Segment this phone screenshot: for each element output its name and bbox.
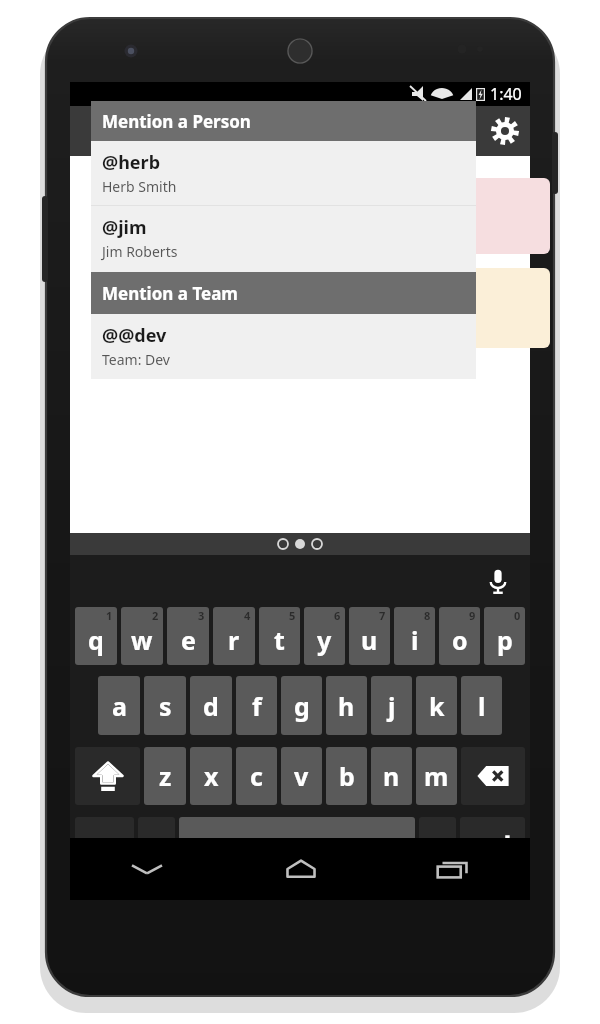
staticText: 3 [198,608,205,623]
staticText: r [228,623,240,657]
button[interactable]: n [371,747,412,805]
button[interactable]: 3 [167,607,209,665]
staticText: s [159,689,172,723]
staticText: k [429,689,445,723]
button[interactable]: Space [179,817,415,874]
button[interactable]: . [419,817,456,874]
staticText: n [383,759,400,793]
staticText: Post [80,764,124,793]
staticText: 1 [106,608,113,623]
button[interactable]: 7 [349,607,390,665]
staticText: x [204,759,219,793]
staticText: Team: Dev [102,350,170,369]
staticText: q [88,623,104,657]
staticText: @@dev [102,323,167,348]
button[interactable]: a [98,676,140,735]
button[interactable]: d [190,676,232,735]
button[interactable]: , [138,817,175,874]
staticText: 5 [289,608,296,623]
staticText: u [361,623,378,657]
button[interactable]: # [373,856,518,894]
button[interactable]: Voice input [480,563,516,599]
button[interactable]: f [236,676,277,735]
staticText: 0 [514,608,521,623]
button[interactable]: Clear [486,808,516,838]
staticText: 9 [469,608,476,623]
staticText: @@ [282,862,318,889]
button[interactable]: 0 [484,607,525,665]
button[interactable]: k [416,676,457,735]
staticText: t [274,623,285,657]
staticText: j [388,689,396,723]
button[interactable]: Send [476,756,520,800]
button[interactable]: g [281,676,322,735]
button[interactable] [370,268,550,348]
staticText: ?123 [85,833,125,858]
button[interactable]: 5m ago [370,178,550,254]
staticText: 6 [334,608,341,623]
staticText: Mention a Person [102,110,251,133]
button[interactable]: h [326,676,367,735]
button[interactable]: j [371,676,412,735]
staticText: a [112,689,127,723]
button[interactable]: @@ [227,856,372,894]
staticText: 7 [379,608,386,623]
button[interactable]: c [236,747,277,805]
button[interactable]: @herb [91,141,476,205]
staticText: z [159,759,172,793]
button[interactable]: 4 [213,607,255,665]
staticText: @herb [102,150,161,175]
staticText: f [252,689,262,723]
staticText: b [339,759,355,793]
button[interactable]: 8 [394,607,435,665]
button[interactable]: z [144,747,186,805]
button[interactable]: 9 [439,607,480,665]
button[interactable]: 6 [304,607,345,665]
staticText: 1:40 [490,83,522,105]
staticText: 8 [424,608,431,623]
staticText: w [131,623,153,657]
button[interactable]: Recents [377,838,530,900]
staticText: v [294,759,309,793]
staticText: # [439,862,452,889]
staticText: o [452,623,468,657]
button[interactable]: Home [224,838,377,900]
staticText: @ [84,810,104,840]
button[interactable]: 2 [121,607,163,665]
staticText: l [478,689,486,723]
staticText: Herb Smith [102,177,177,196]
button[interactable]: s [144,676,186,735]
staticText: m [424,759,449,793]
staticText: , [153,833,160,863]
button[interactable]: Enter [460,817,525,874]
button[interactable]: b [326,747,367,805]
button[interactable]: @jim [91,206,476,272]
button[interactable]: @@dev [91,314,476,379]
staticText: i [411,623,419,657]
button[interactable]: x [190,747,232,805]
button[interactable]: m [416,747,457,805]
staticText: y [317,623,332,657]
staticText: @jim [102,215,147,240]
button[interactable]: Backspace [461,747,525,805]
button[interactable]: 5 [259,607,300,665]
staticText: 4 [244,608,251,623]
button[interactable]: Settings [480,106,530,156]
button[interactable]: Back [70,838,224,900]
staticText: . [434,833,441,863]
button[interactable]: @ [82,856,226,894]
button[interactable]: ?123 [75,817,134,874]
staticText: p [497,623,513,657]
button[interactable]: Shift [75,747,140,805]
button[interactable]: v [281,747,322,805]
staticText: Jim Roberts [102,242,178,261]
button[interactable]: l [461,676,502,735]
staticText: e [181,623,196,657]
staticText: d [203,689,219,723]
staticText: g [294,689,310,723]
staticText: Mention a Team [102,282,238,305]
staticText: h [338,689,355,723]
staticText: @ [145,862,163,889]
button[interactable]: 1 [75,607,117,665]
